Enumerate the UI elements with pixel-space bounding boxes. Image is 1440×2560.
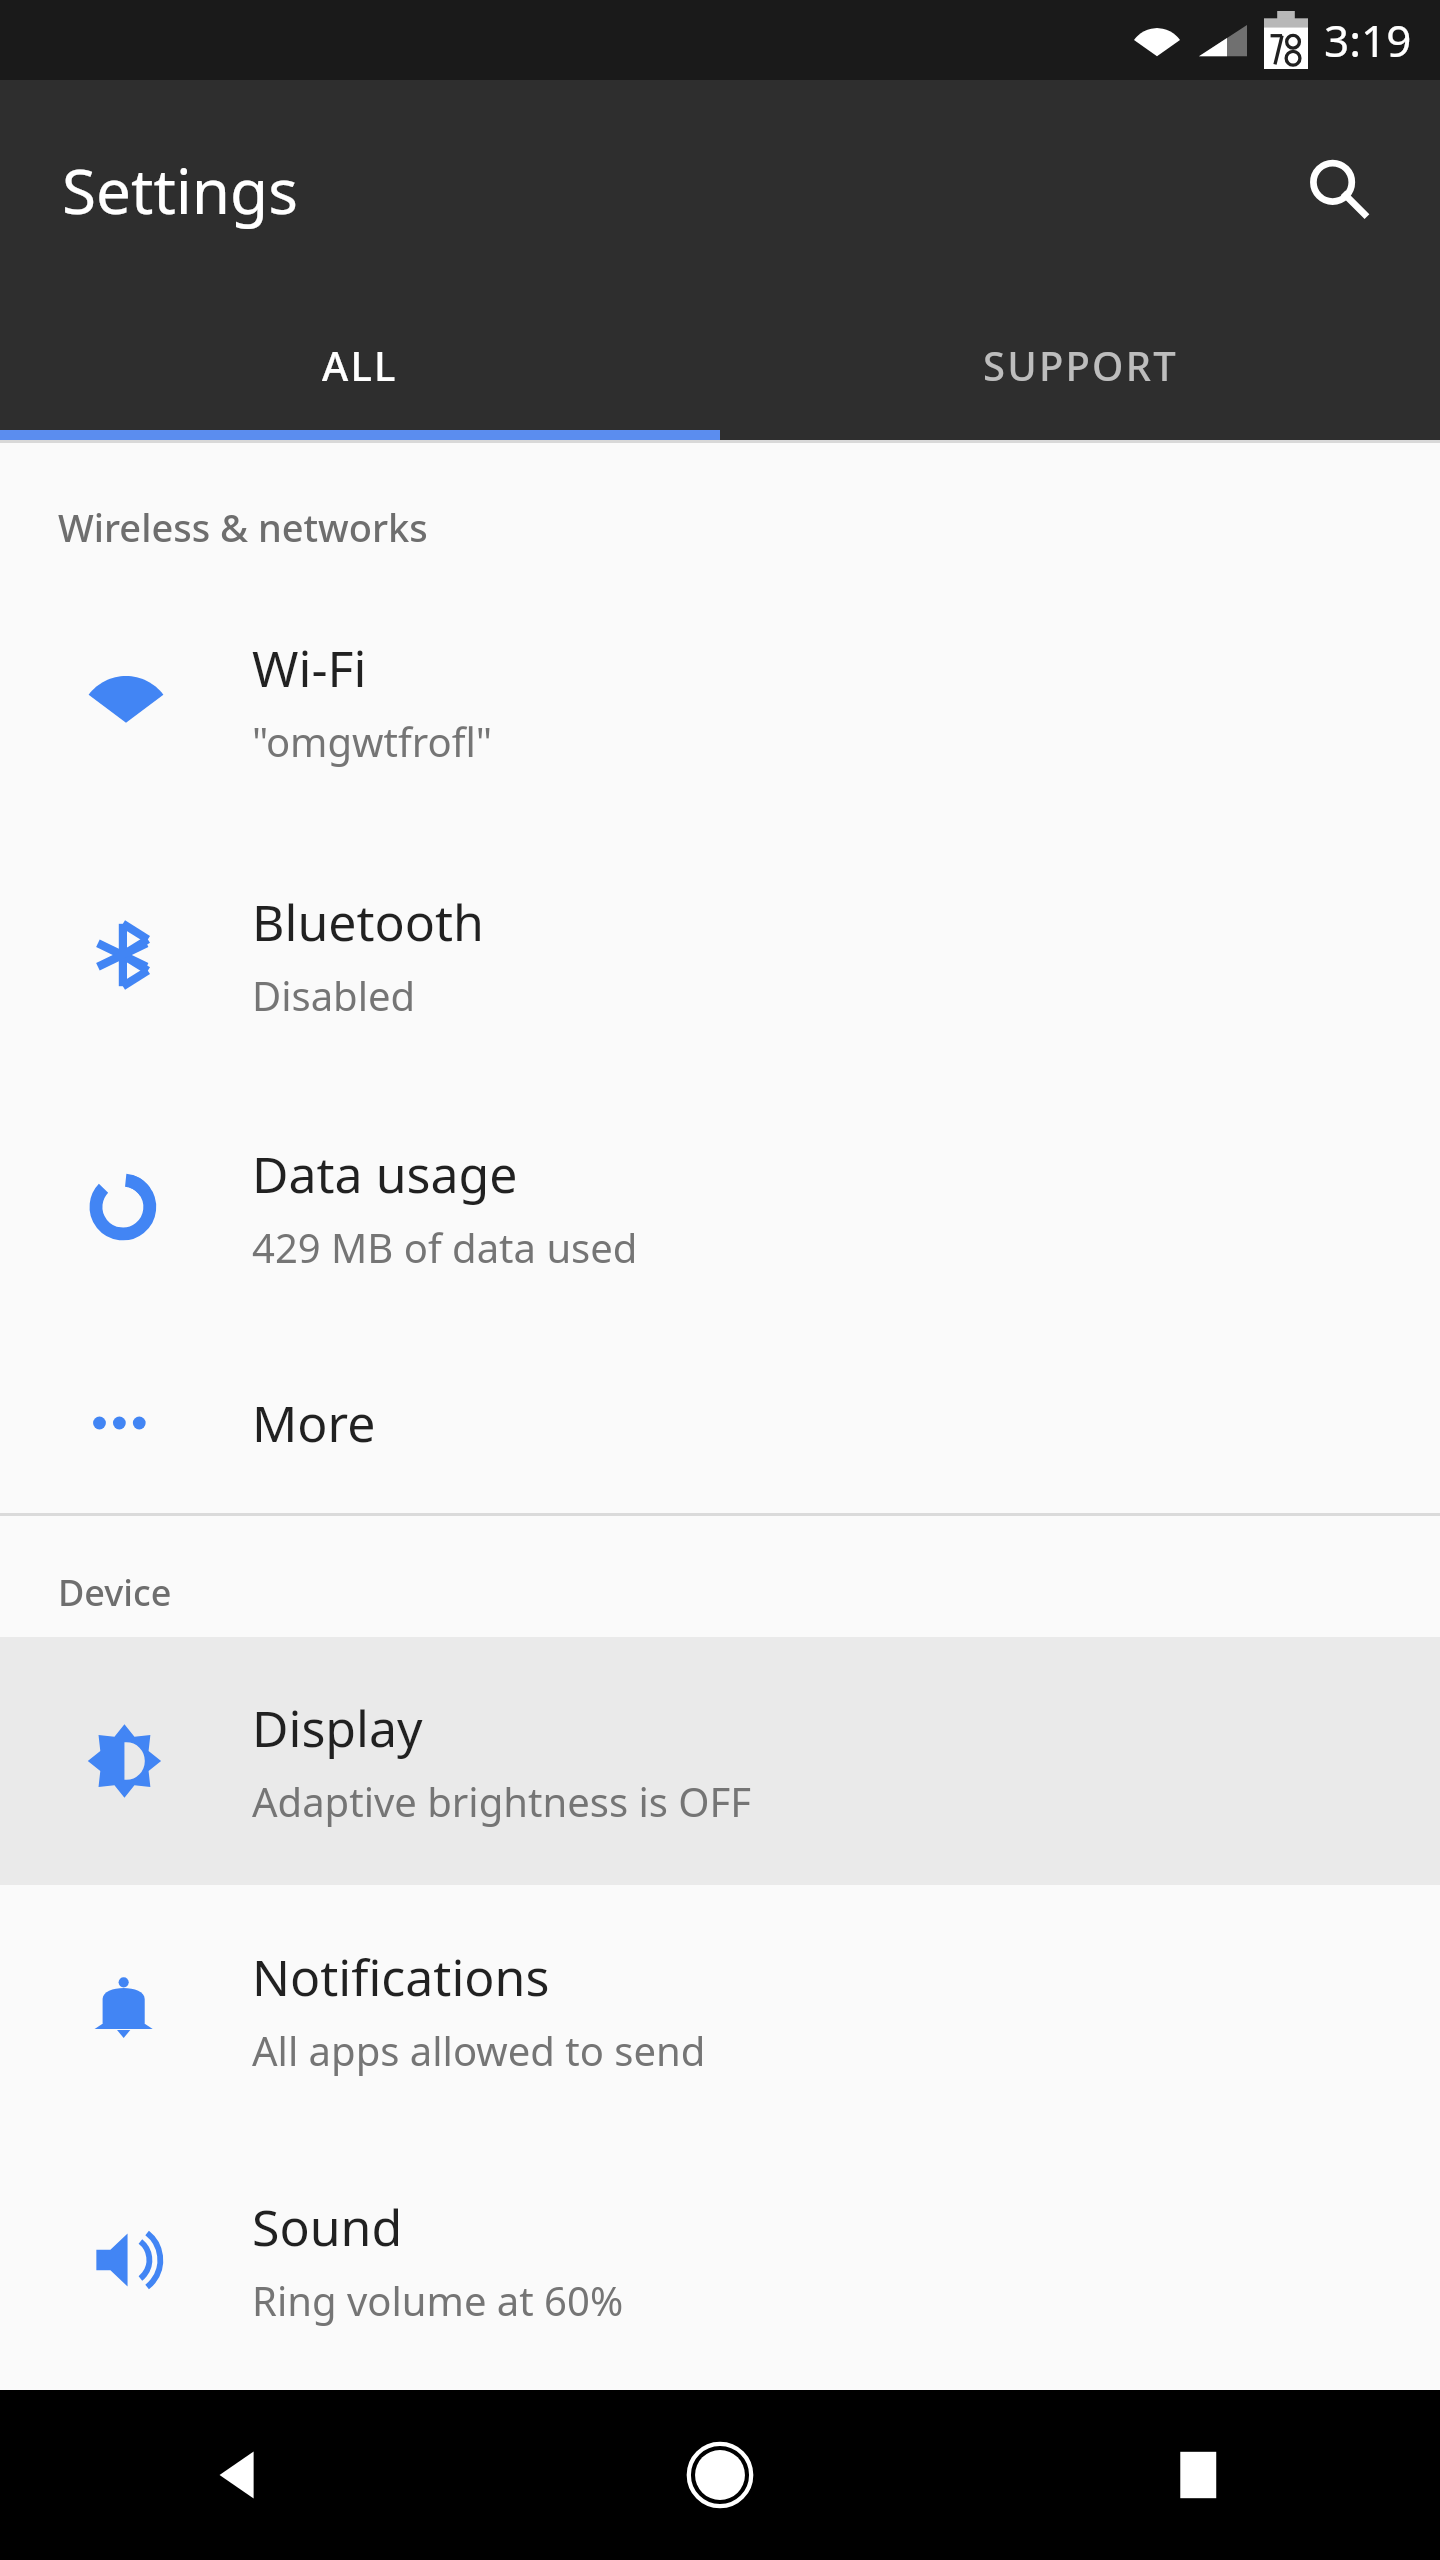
staticText: Disabled: [252, 968, 416, 1022]
button[interactable]: Home: [480, 2390, 960, 2560]
button[interactable]: Bluetooth: [0, 829, 1440, 1081]
staticText: ALL: [322, 338, 398, 392]
button[interactable]: Recent apps: [960, 2390, 1440, 2560]
staticText: More: [252, 1389, 376, 1457]
staticText: 3:19: [1324, 10, 1412, 70]
staticText: Settings: [62, 148, 298, 232]
button[interactable]: Wi-Fi: [0, 573, 1440, 829]
staticText: Wireless & networks: [58, 501, 428, 553]
button[interactable]: Notifications: [0, 1885, 1440, 2135]
staticText: Adaptive brightness is OFF: [252, 1774, 752, 1828]
staticText: Wi-Fi: [252, 634, 367, 702]
staticText: Data usage: [252, 1140, 518, 1208]
button[interactable]: Display: [0, 1637, 1440, 1885]
staticText: Notifications: [252, 1943, 550, 2011]
button[interactable]: Back: [0, 2390, 480, 2560]
staticText: Bluetooth: [252, 888, 484, 956]
staticText: "omgwtfrofl": [252, 714, 493, 768]
staticText: 429 MB of data used: [252, 1220, 638, 1274]
button[interactable]: More: [0, 1333, 1440, 1513]
button[interactable]: Data usage: [0, 1081, 1440, 1333]
staticText: Sound: [252, 2193, 403, 2261]
button[interactable]: ALL: [0, 300, 720, 430]
staticText: Device: [58, 1568, 172, 1617]
button[interactable]: Sound: [0, 2135, 1440, 2385]
staticText: All apps allowed to send: [252, 2023, 706, 2077]
staticText: Display: [252, 1694, 423, 1762]
button[interactable]: SUPPORT: [720, 300, 1440, 430]
staticText: Ring volume at 60%: [252, 2273, 624, 2327]
button[interactable]: Search: [1284, 135, 1394, 245]
staticText: SUPPORT: [983, 338, 1178, 392]
